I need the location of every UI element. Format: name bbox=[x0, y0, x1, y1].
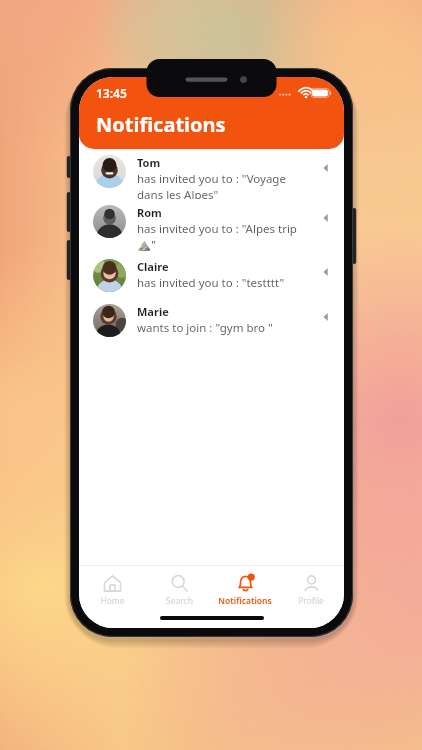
staticText: Search bbox=[166, 595, 193, 607]
other: Open notification bbox=[320, 266, 332, 278]
button[interactable]: Rom bbox=[79, 199, 344, 253]
staticText: Rom bbox=[137, 205, 162, 220]
staticText: has invited you to : "testttt" bbox=[137, 275, 285, 291]
staticText: has invited you to : "Alpes trip ⛰" bbox=[137, 221, 314, 252]
button[interactable]: Profile bbox=[278, 569, 344, 607]
other: Open notification bbox=[320, 162, 332, 174]
staticText: wants to join : "gym bro " bbox=[137, 320, 273, 336]
staticText: 13:45 bbox=[96, 85, 127, 101]
staticText: Notifications bbox=[96, 111, 226, 138]
staticText: Notifications bbox=[218, 595, 272, 607]
button[interactable]: Notifications bbox=[212, 569, 278, 607]
button[interactable]: Home bbox=[79, 569, 146, 607]
button[interactable]: Claire bbox=[79, 253, 344, 298]
staticText: has invited you to : "Voyage dans les Al… bbox=[137, 171, 314, 199]
staticText: Profile bbox=[298, 595, 324, 607]
button[interactable]: Tom bbox=[79, 149, 344, 199]
other: Open notification bbox=[320, 311, 332, 323]
staticText: Tom bbox=[137, 155, 161, 170]
button[interactable]: Marie bbox=[79, 298, 344, 346]
staticText: Marie bbox=[137, 304, 169, 319]
staticText: Claire bbox=[137, 259, 169, 274]
staticText: Home bbox=[100, 595, 125, 607]
button[interactable]: Search bbox=[146, 569, 212, 607]
other: Open notification bbox=[320, 212, 332, 224]
